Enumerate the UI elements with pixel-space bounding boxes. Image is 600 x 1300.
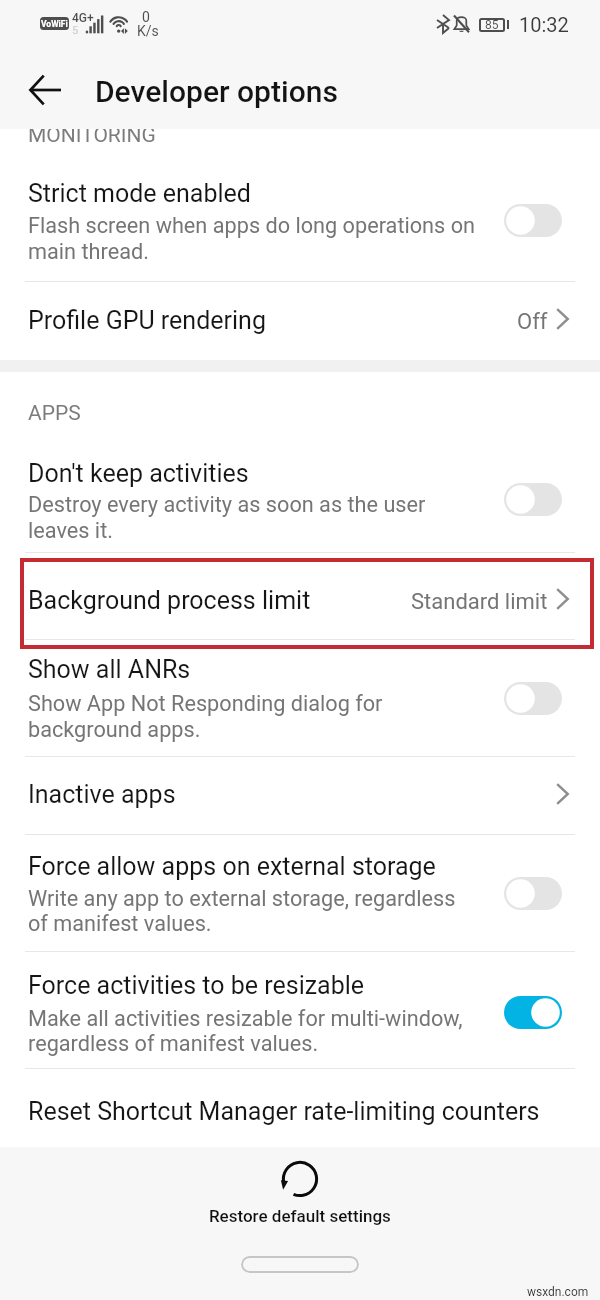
staticText: Show App Not Responding dialog for bbox=[28, 691, 383, 716]
button[interactable]: Strict mode enabled bbox=[504, 204, 562, 237]
staticText: VoWiFi bbox=[41, 19, 68, 29]
staticText: Inactive apps bbox=[28, 780, 176, 809]
staticText: wsxdn.com bbox=[527, 1285, 589, 1299]
staticText: Write any app to external storage, regar… bbox=[28, 886, 456, 911]
staticText: 85 bbox=[485, 18, 499, 32]
button[interactable] bbox=[0, 1069, 600, 1147]
button[interactable] bbox=[0, 553, 600, 639]
button[interactable]: Restore default settings bbox=[190, 1155, 410, 1240]
staticText: Reset Shortcut Manager rate-limiting cou… bbox=[28, 1097, 540, 1126]
button[interactable] bbox=[0, 129, 600, 281]
staticText: main thread. bbox=[28, 239, 149, 264]
staticText: Restore default settings bbox=[209, 1206, 391, 1226]
button[interactable] bbox=[0, 282, 600, 358]
staticText: Strict mode enabled bbox=[28, 179, 251, 208]
staticText: Background process limit bbox=[28, 586, 311, 615]
staticText: Make all activities resizable for multi-… bbox=[28, 1006, 463, 1031]
button[interactable] bbox=[0, 436, 600, 552]
staticText: background apps. bbox=[28, 717, 201, 742]
staticText: Don't keep activities bbox=[28, 459, 249, 488]
button[interactable]: Don't keep activities bbox=[504, 483, 562, 516]
staticText: leaves it. bbox=[28, 518, 113, 543]
button[interactable]: Show all ANRs bbox=[504, 682, 562, 715]
staticText: Destroy every activity as soon as the us… bbox=[28, 492, 426, 517]
staticText: Force activities to be resizable bbox=[28, 971, 365, 1000]
staticText: 5 bbox=[72, 24, 79, 37]
button[interactable] bbox=[0, 757, 600, 833]
staticText: Developer options bbox=[95, 74, 338, 109]
staticText: Off bbox=[517, 309, 548, 335]
staticText: Flash screen when apps do long operation… bbox=[28, 213, 476, 238]
staticText: regardless of manifest values. bbox=[28, 1031, 319, 1056]
staticText: Standard limit bbox=[411, 589, 548, 615]
staticText: 10:32 bbox=[519, 13, 569, 36]
staticText: of manifest values. bbox=[28, 911, 212, 936]
staticText: 0 bbox=[142, 9, 150, 25]
staticText: Profile GPU rendering bbox=[28, 306, 266, 335]
button[interactable]: Force allow apps on external storage bbox=[504, 877, 562, 910]
button[interactable]: Back bbox=[21, 66, 69, 114]
staticText: K/s bbox=[137, 23, 159, 39]
staticText: Force allow apps on external storage bbox=[28, 852, 436, 881]
staticText: MONITORING bbox=[28, 123, 156, 148]
button[interactable]: Force activities to be resizable bbox=[504, 996, 562, 1029]
staticText: Show all ANRs bbox=[28, 655, 191, 684]
button[interactable] bbox=[0, 640, 600, 756]
button[interactable] bbox=[0, 834, 600, 951]
staticText: APPS bbox=[28, 401, 81, 426]
staticText: 4G+ bbox=[72, 11, 94, 25]
button[interactable] bbox=[0, 952, 600, 1068]
